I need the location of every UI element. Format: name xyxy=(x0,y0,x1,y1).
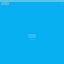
button[interactable]: Title xyxy=(1,2,9,5)
